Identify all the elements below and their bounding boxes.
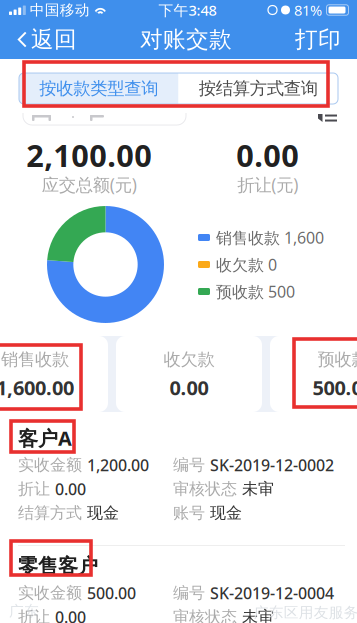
button[interactable]: 收欠款 xyxy=(116,336,262,412)
button[interactable]: 预收款 xyxy=(270,336,357,412)
staticText: 按结算方式查询 xyxy=(199,78,318,99)
staticText: 0.00 xyxy=(169,374,208,401)
staticText: 1,200.00 xyxy=(87,454,149,476)
staticText: 0.00 xyxy=(55,478,86,500)
button[interactable]: 零售客户 xyxy=(0,546,357,623)
staticText: 零售客户 xyxy=(18,554,98,578)
staticText: 现金 xyxy=(87,503,119,523)
staticText: 预收款 xyxy=(317,349,357,370)
staticText: SK-2019-12-0004 xyxy=(210,582,334,604)
staticText: 折让 xyxy=(18,607,50,623)
staticText: 0.00 xyxy=(236,135,299,175)
button[interactable]: 客户A xyxy=(0,418,357,533)
staticText: 下午3:48 xyxy=(158,0,216,20)
staticText: 收欠款 0 xyxy=(216,254,277,275)
staticText: 81% xyxy=(290,0,326,20)
staticText: 销售收款 xyxy=(1,349,69,370)
button[interactable]: 按收款类型查询 xyxy=(19,73,178,104)
staticText: 打印 xyxy=(295,26,341,53)
staticText: 500.00 xyxy=(87,582,136,604)
staticText: 结算方式 xyxy=(18,503,82,523)
staticText: 编号 xyxy=(173,455,205,475)
staticText: 对账交款 xyxy=(140,26,232,53)
button[interactable]: 返回 xyxy=(0,20,87,59)
staticText: 实收金额 xyxy=(18,455,82,475)
staticText: 未审 xyxy=(242,479,274,499)
staticText: 按收款类型查询 xyxy=(39,78,158,99)
button[interactable]: 按结算方式查询 xyxy=(178,73,338,104)
staticText: 现金 xyxy=(210,503,242,523)
staticText: 应交总额(元) xyxy=(42,173,137,196)
staticText: 0.00 xyxy=(55,606,86,623)
staticText: 广东 xyxy=(9,602,39,620)
staticText: 预收款 500 xyxy=(216,281,295,302)
staticText: 500.00 xyxy=(312,374,357,401)
staticText: 收欠款 xyxy=(163,349,214,370)
staticText: 折让(元) xyxy=(237,173,298,196)
staticText: 折让 xyxy=(18,479,50,499)
staticText: 2,100.00 xyxy=(26,135,152,175)
staticText: SK-2019-12-0002 xyxy=(210,454,334,476)
staticText: 广东区用友服务中心 xyxy=(253,603,357,621)
button[interactable]: 销售收款 xyxy=(0,336,108,412)
staticText: 审核状态 xyxy=(173,607,237,623)
staticText: 中国移动 xyxy=(26,1,94,19)
staticText: 1,600.00 xyxy=(0,374,74,401)
button[interactable]: 打印 xyxy=(285,20,357,59)
staticText: 审核状态 xyxy=(173,479,237,499)
staticText: 客户A xyxy=(18,425,72,451)
staticText: 账号 xyxy=(173,503,205,523)
staticText: 实收金额 xyxy=(18,583,82,603)
staticText: 返回 xyxy=(31,26,77,53)
staticText: 编号 xyxy=(173,583,205,603)
staticText: 广东区用友服务中心 xyxy=(254,604,357,622)
staticText: 销售收款 1,600 xyxy=(216,227,324,248)
staticText: 未审 xyxy=(242,607,274,623)
